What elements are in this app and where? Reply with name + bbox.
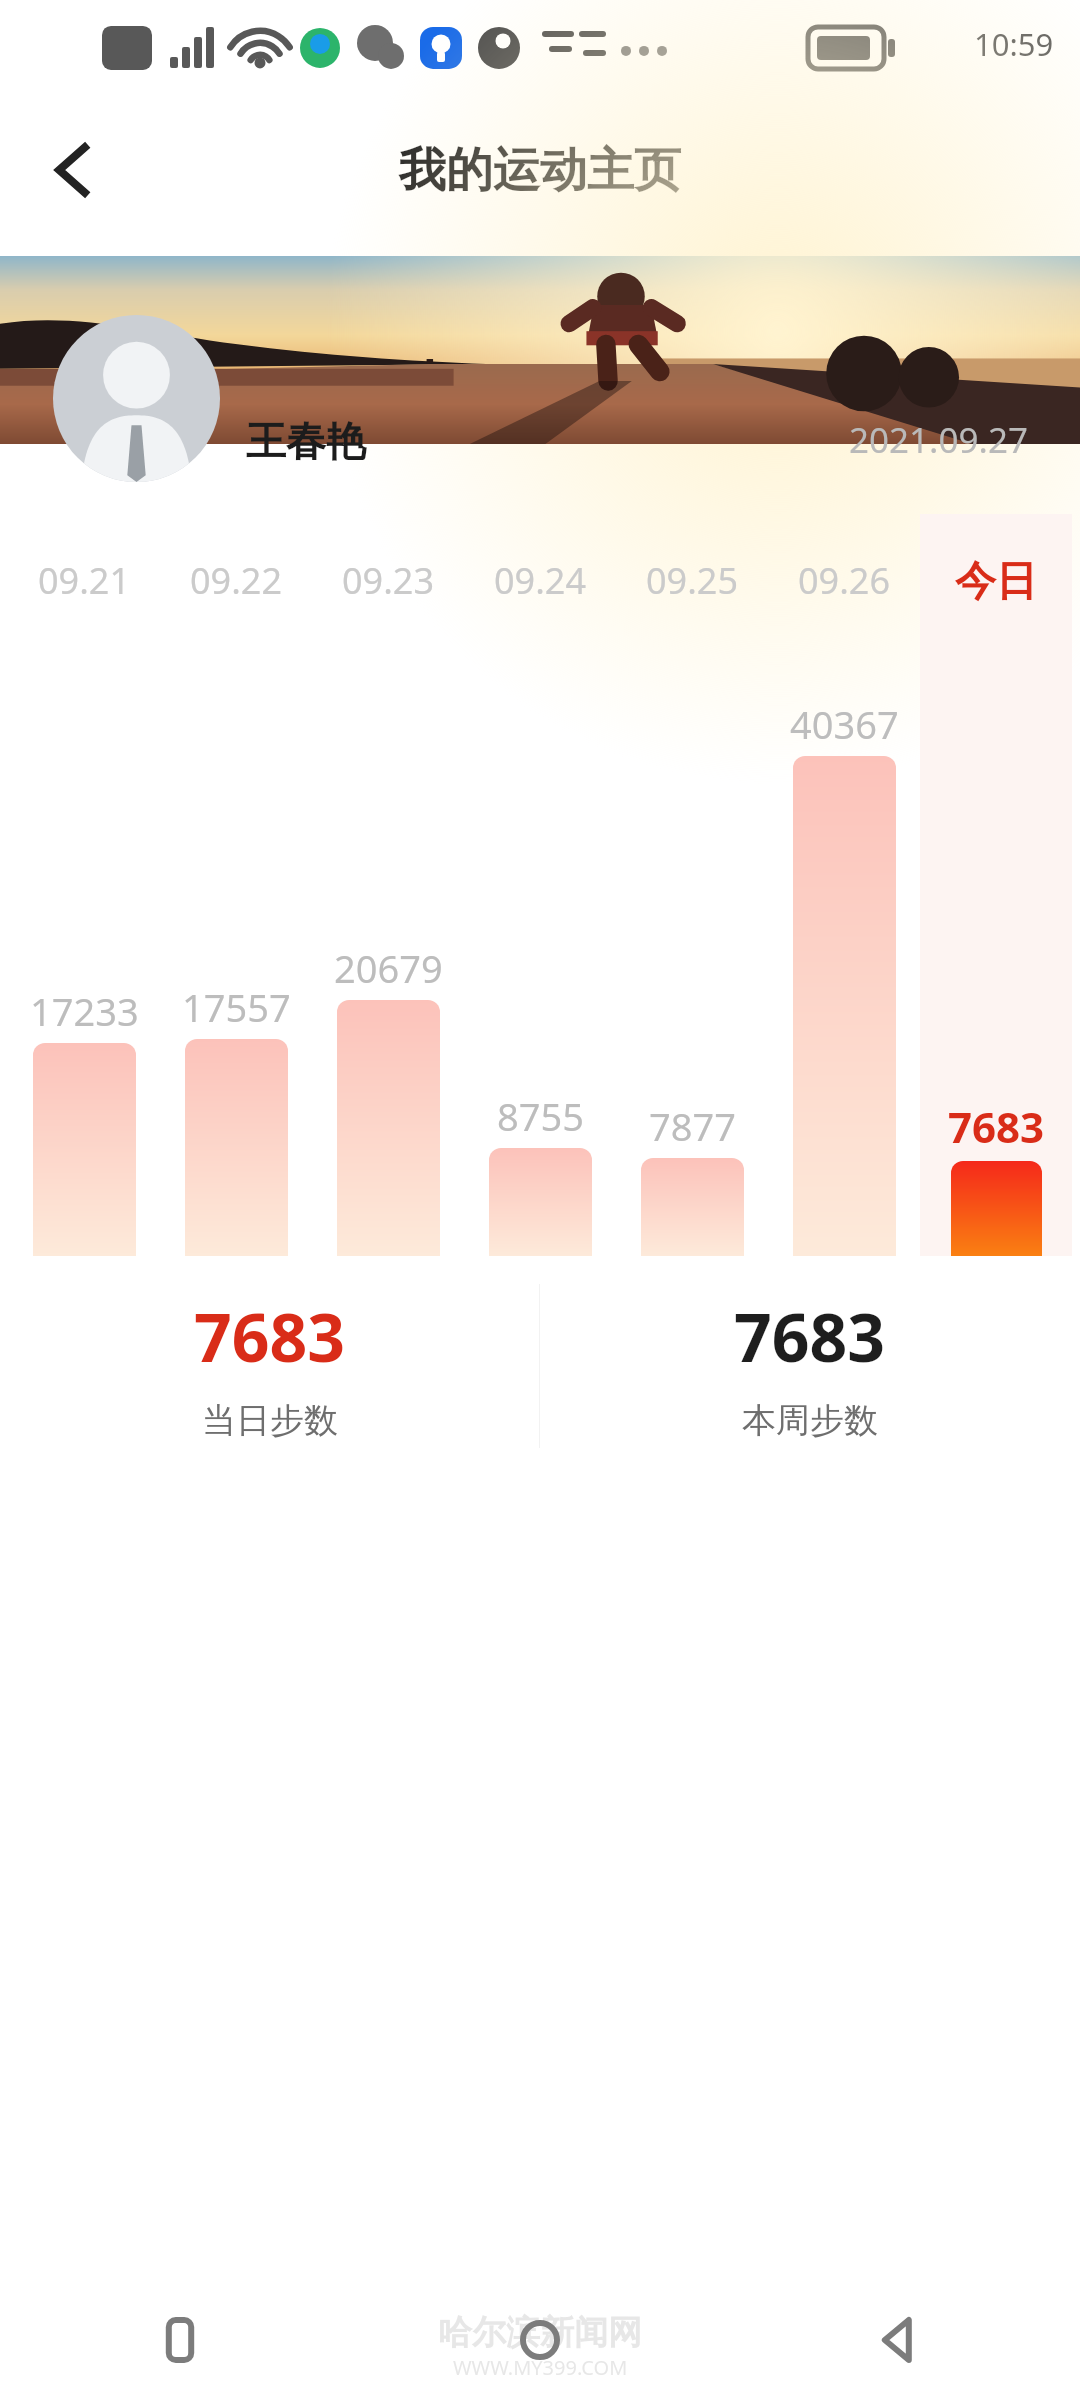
button[interactable]: 09.26 xyxy=(768,514,920,1256)
button[interactable]: 今日 xyxy=(920,514,1072,1256)
button[interactable]: 09.21 xyxy=(8,514,160,1256)
button[interactable]: 09.23 xyxy=(312,514,464,1256)
staticText: 09.23 xyxy=(312,556,464,605)
staticText: 40367 xyxy=(790,698,899,750)
staticText: 09.25 xyxy=(616,556,768,605)
button[interactable]: 09.22 xyxy=(160,514,312,1256)
button[interactable]: Back xyxy=(720,2280,1080,2400)
staticText: 09.26 xyxy=(768,556,920,605)
staticText: 17557 xyxy=(182,981,291,1033)
staticText: 09.22 xyxy=(160,556,312,605)
staticText: 7683 xyxy=(734,1291,886,1381)
button[interactable]: Back xyxy=(34,128,118,212)
staticText: 王春艳 xyxy=(246,416,366,466)
staticText: 7683 xyxy=(948,1098,1045,1155)
staticText: 8755 xyxy=(497,1090,584,1142)
button[interactable]: 09.25 xyxy=(616,514,768,1256)
button[interactable]: 09.24 xyxy=(464,514,616,1256)
staticText: 2021.09.27 xyxy=(849,416,1028,464)
staticText: 当日步数 xyxy=(202,1399,338,1442)
button[interactable]: Recents xyxy=(0,2280,360,2400)
button[interactable]: 7683 xyxy=(0,1256,539,1476)
button[interactable]: 7683 xyxy=(540,1256,1080,1476)
button[interactable]: Home xyxy=(360,2280,720,2400)
staticText: 本周步数 xyxy=(742,1399,878,1442)
staticText: 哈尔滨新闻网 xyxy=(438,2311,642,2354)
staticText: 09.24 xyxy=(464,556,616,605)
staticText: 10:59 xyxy=(974,23,1054,65)
staticText: 今日 xyxy=(920,556,1072,608)
staticText: 20679 xyxy=(334,942,443,994)
staticText: WWW.MY399.COM xyxy=(453,2354,628,2381)
staticText: 09.21 xyxy=(8,556,160,605)
staticText: 17233 xyxy=(30,985,139,1037)
staticText: 7877 xyxy=(649,1100,736,1152)
staticText: 7683 xyxy=(194,1291,346,1381)
staticText: 我的运动主页 xyxy=(399,141,681,200)
